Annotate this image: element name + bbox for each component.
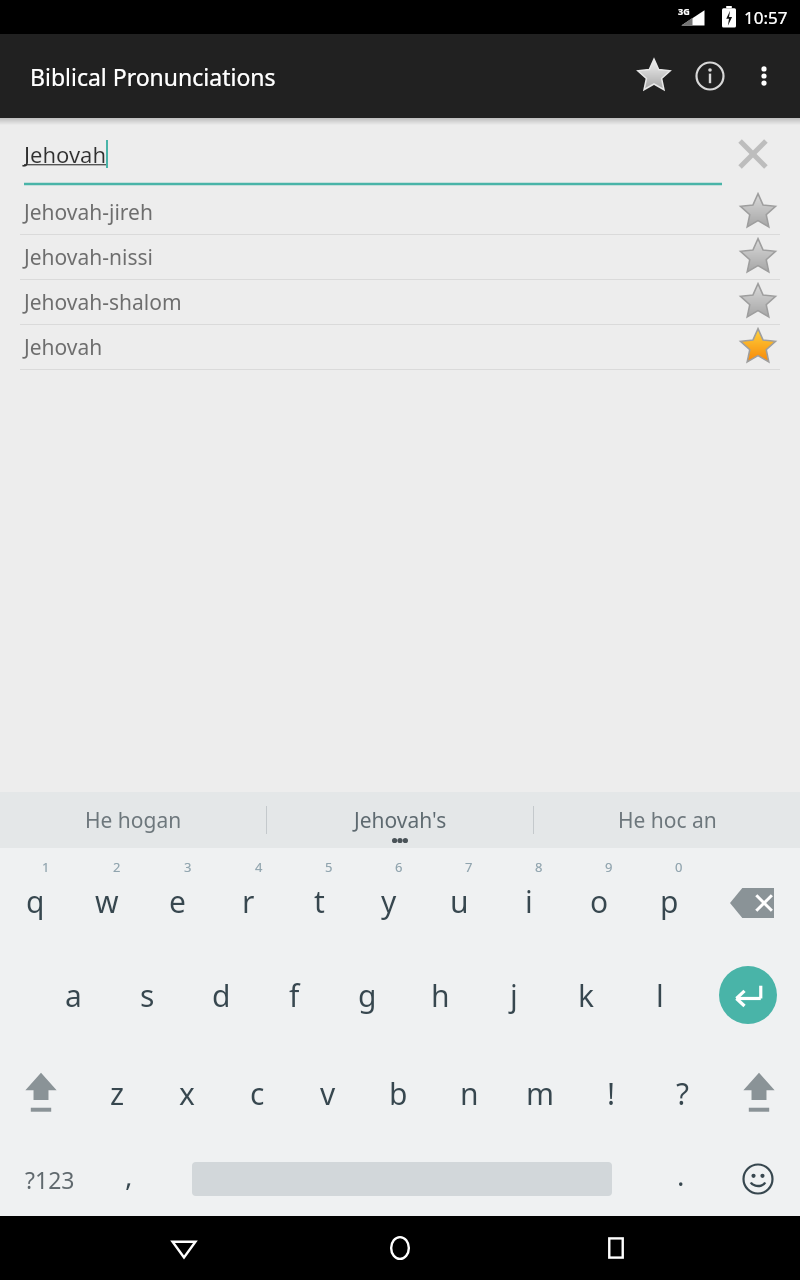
- button[interactable]: ?: [647, 1044, 718, 1142]
- button[interactable]: Recent apps: [584, 1216, 648, 1280]
- button[interactable]: b: [363, 1044, 434, 1142]
- staticText: a: [65, 975, 82, 1016]
- button[interactable]: v: [292, 1044, 363, 1142]
- staticText: n: [460, 1073, 479, 1114]
- button[interactable]: d: [184, 946, 258, 1044]
- button[interactable]: 7: [424, 848, 494, 946]
- staticText: 5: [325, 858, 333, 876]
- button[interactable]: Enter: [696, 946, 800, 1044]
- button[interactable]: f: [258, 946, 331, 1044]
- button[interactable]: Jehovah's: [267, 792, 533, 848]
- button[interactable]: x: [152, 1044, 222, 1142]
- staticText: Jehovah-jireh: [24, 198, 153, 227]
- button[interactable]: Jehovah: [0, 325, 800, 369]
- button[interactable]: z: [82, 1044, 152, 1142]
- button[interactable]: 6: [354, 848, 424, 946]
- button[interactable]: l: [623, 946, 696, 1044]
- staticText: 9: [605, 858, 613, 876]
- button[interactable]: h: [404, 946, 477, 1044]
- button[interactable]: Jehovah-jireh: [0, 190, 800, 234]
- staticText: Jehovah: [24, 333, 103, 362]
- button[interactable]: Jehovah: [24, 139, 108, 169]
- staticText: ,: [125, 1156, 133, 1194]
- button[interactable]: Shift: [0, 1044, 82, 1142]
- staticText: Jehovah-shalom: [24, 288, 182, 317]
- staticText: r: [242, 881, 255, 922]
- staticText: !: [607, 1073, 616, 1114]
- staticText: e: [169, 881, 186, 922]
- staticText: z: [110, 1073, 125, 1114]
- button[interactable]: c: [222, 1044, 292, 1142]
- button[interactable]: Home: [368, 1216, 432, 1280]
- button[interactable]: 4: [213, 848, 284, 946]
- button[interactable]: n: [434, 1044, 505, 1142]
- button[interactable]: He hoc an: [534, 792, 800, 848]
- button[interactable]: g: [331, 946, 404, 1044]
- staticText: s: [140, 975, 155, 1016]
- button[interactable]: k: [550, 946, 623, 1044]
- button[interactable]: He hogan: [0, 792, 266, 848]
- button[interactable]: Info: [682, 48, 738, 104]
- staticText: m: [526, 1073, 555, 1114]
- staticText: o: [590, 881, 609, 922]
- staticText: j: [510, 975, 518, 1016]
- staticText: f: [289, 975, 300, 1016]
- button[interactable]: 3: [142, 848, 213, 946]
- staticText: c: [250, 1073, 265, 1114]
- button[interactable]: More options: [738, 50, 790, 102]
- button[interactable]: 1: [0, 848, 71, 946]
- staticText: 6: [395, 858, 403, 876]
- staticText: Jehovah's: [354, 806, 447, 835]
- staticText: 10:57: [744, 6, 788, 29]
- staticText: t: [314, 881, 325, 922]
- staticText: 4: [255, 858, 263, 876]
- staticText: k: [578, 975, 595, 1016]
- staticText: 2: [113, 858, 121, 876]
- staticText: h: [431, 975, 450, 1016]
- staticText: He hogan: [85, 806, 182, 835]
- staticText: He hoc an: [618, 806, 717, 835]
- staticText: 0: [675, 858, 683, 876]
- staticText: g: [358, 975, 377, 1016]
- button[interactable]: 8: [494, 848, 564, 946]
- button[interactable]: j: [477, 946, 550, 1044]
- button[interactable]: .: [646, 1142, 716, 1216]
- button[interactable]: a: [36, 946, 110, 1044]
- button[interactable]: ?123: [0, 1142, 100, 1216]
- staticText: l: [656, 975, 664, 1016]
- button[interactable]: Back: [152, 1216, 216, 1280]
- staticText: Biblical Pronunciations: [30, 61, 276, 92]
- staticText: q: [26, 881, 45, 922]
- staticText: 7: [465, 858, 473, 876]
- button[interactable]: 0: [634, 848, 704, 946]
- button[interactable]: Clear search: [726, 127, 780, 181]
- staticText: 8: [535, 858, 543, 876]
- button[interactable]: Jehovah-shalom: [0, 280, 800, 324]
- staticText: ?123: [25, 1164, 75, 1195]
- button[interactable]: Shift: [718, 1044, 800, 1142]
- button[interactable]: 5: [284, 848, 354, 946]
- staticText: u: [450, 881, 469, 922]
- staticText: v: [320, 1073, 336, 1114]
- button[interactable]: Space: [158, 1142, 646, 1216]
- staticText: b: [389, 1073, 408, 1114]
- staticText: .: [677, 1156, 685, 1194]
- button[interactable]: 9: [564, 848, 634, 946]
- button[interactable]: Jehovah-nissi: [0, 235, 800, 279]
- button[interactable]: ,: [100, 1142, 158, 1216]
- button[interactable]: m: [505, 1044, 576, 1142]
- staticText: Jehovah: [24, 139, 106, 169]
- button[interactable]: Backspace: [704, 848, 800, 946]
- staticText: x: [179, 1073, 195, 1114]
- button[interactable]: s: [110, 946, 184, 1044]
- staticText: w: [95, 881, 119, 922]
- staticText: 3G: [678, 5, 690, 17]
- staticText: ?: [676, 1073, 690, 1114]
- button[interactable]: Emoji: [716, 1142, 800, 1216]
- button[interactable]: 2: [71, 848, 142, 946]
- staticText: p: [660, 881, 679, 922]
- button[interactable]: Favorites: [626, 48, 682, 104]
- button[interactable]: !: [576, 1044, 647, 1142]
- staticText: 1: [42, 858, 50, 876]
- staticText: d: [212, 975, 231, 1016]
